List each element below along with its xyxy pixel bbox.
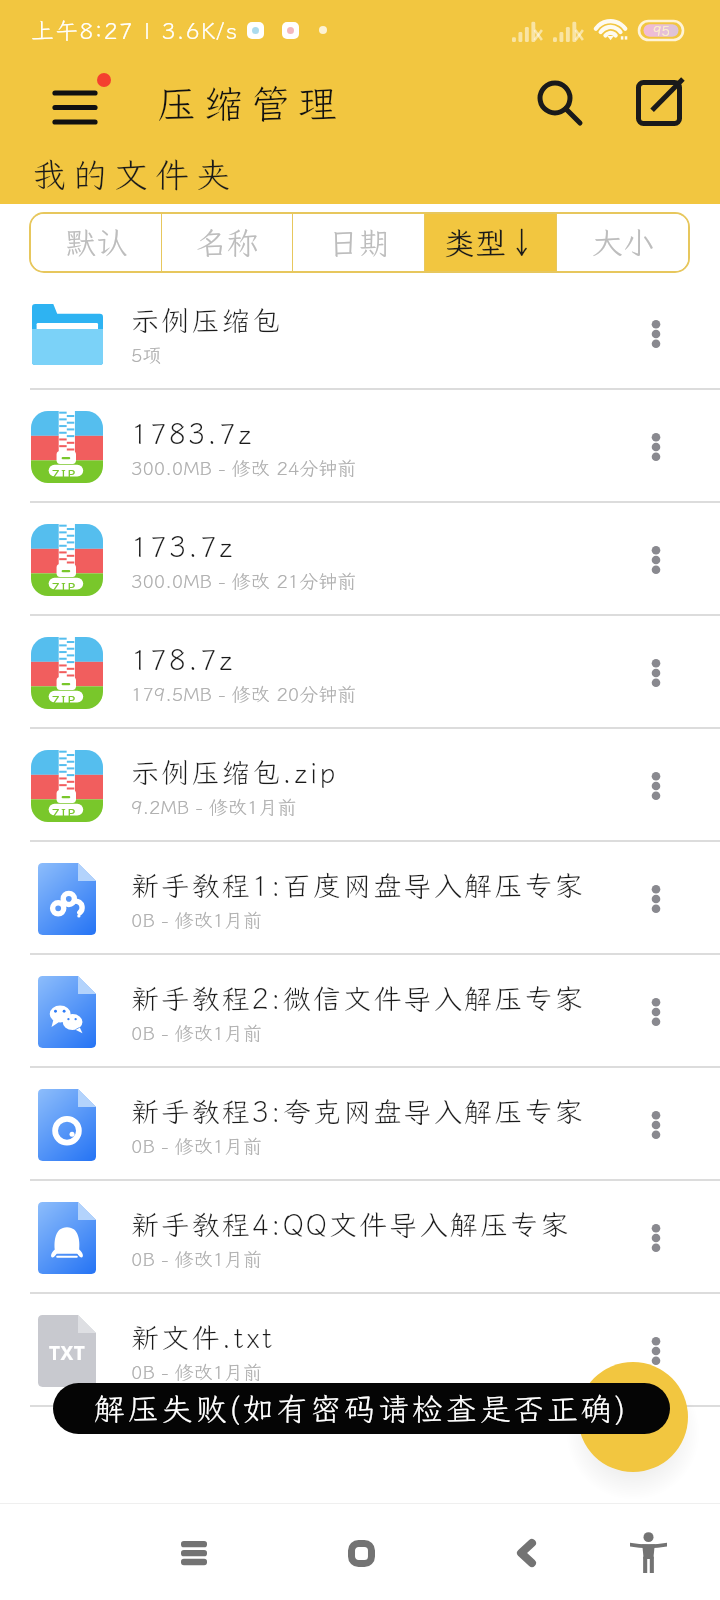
staticText: 压缩管理: [157, 78, 346, 129]
button[interactable]: ZIP: [0, 503, 720, 616]
button[interactable]: 新建: [578, 1362, 688, 1472]
button[interactable]: 更多选项: [619, 1202, 691, 1274]
button[interactable]: TXT: [0, 1294, 720, 1407]
staticText: ZIP: [52, 691, 78, 709]
staticText: 300.0MB - 修改 21分钟前: [131, 568, 357, 593]
button[interactable]: 更多选项: [619, 1089, 691, 1161]
button[interactable]: 示例压缩包: [0, 277, 720, 390]
staticText: 300.0MB - 修改 24分钟前: [131, 455, 357, 480]
staticText: 示例压缩包.zip: [131, 754, 338, 791]
button[interactable]: 大小: [557, 214, 688, 271]
staticText: 0B - 修改1月前: [131, 1133, 263, 1158]
button[interactable]: 最近任务: [146, 1530, 242, 1576]
staticText: 5项: [131, 342, 162, 367]
staticText: 1783.7z: [131, 415, 254, 452]
button[interactable]: 更多选项: [619, 750, 691, 822]
staticText: 0B - 修改1月前: [131, 1246, 263, 1271]
staticText: 新手教程4:QQ文件导入解压专家: [131, 1206, 571, 1243]
button[interactable]: 日期: [293, 214, 424, 271]
staticText: 95: [653, 22, 670, 40]
staticText: 0B - 修改1月前: [131, 907, 263, 932]
staticText: 上午8:27 | 3.6K/s: [31, 15, 239, 45]
button[interactable]: 默认: [31, 214, 161, 271]
button[interactable]: ZIP: [0, 390, 720, 503]
staticText: 日期: [328, 222, 390, 263]
button[interactable]: 新手教程1:百度网盘导入解压专家: [0, 842, 720, 955]
staticText: 我的文件夹: [32, 152, 237, 197]
staticText: 0B - 修改1月前: [131, 1020, 263, 1045]
button[interactable]: 新手教程4:QQ文件导入解压专家: [0, 1181, 720, 1294]
staticText: 示例压缩包: [131, 302, 283, 339]
button[interactable]: 更多选项: [619, 298, 691, 370]
button[interactable]: 名称: [162, 214, 292, 271]
staticText: 新手教程1:百度网盘导入解压专家: [131, 867, 585, 904]
button[interactable]: ZIP: [0, 729, 720, 842]
staticText: 新文件.txt: [131, 1319, 275, 1356]
button[interactable]: 更多选项: [619, 1315, 691, 1387]
button[interactable]: 无障碍: [600, 1524, 696, 1580]
button[interactable]: ZIP: [0, 616, 720, 729]
staticText: TXT: [49, 1340, 86, 1366]
button[interactable]: 搜索: [516, 60, 602, 146]
staticText: 名称: [196, 222, 258, 263]
button[interactable]: 更多选项: [619, 637, 691, 709]
button[interactable]: 更多选项: [619, 411, 691, 483]
button[interactable]: 返回: [478, 1530, 574, 1576]
staticText: 类型↓: [444, 222, 537, 263]
staticText: 178.7z: [131, 641, 235, 678]
staticText: 179.5MB - 修改 20分钟前: [131, 681, 357, 706]
staticText: 9.2MB - 修改1月前: [131, 794, 297, 819]
staticText: 173.7z: [131, 528, 235, 565]
staticText: ZIP: [52, 804, 78, 822]
staticText: 解压失败(如有密码请检查是否正确): [94, 1388, 629, 1429]
button[interactable]: 更多选项: [619, 524, 691, 596]
button[interactable]: 解压失败(如有密码请检查是否正确): [53, 1383, 670, 1434]
staticText: 默认: [65, 222, 127, 263]
button[interactable]: 主屏幕: [313, 1530, 409, 1576]
staticText: ZIP: [52, 578, 78, 596]
staticText: 大小: [592, 222, 654, 263]
button[interactable]: 更多选项: [619, 976, 691, 1048]
staticText: 0B - 修改1月前: [131, 1359, 263, 1384]
button[interactable]: 新手教程2:微信文件导入解压专家: [0, 955, 720, 1068]
staticText: 新手教程3:夸克网盘导入解压专家: [131, 1093, 585, 1130]
button[interactable]: 新手教程3:夸克网盘导入解压专家: [0, 1068, 720, 1181]
staticText: ZIP: [52, 465, 78, 483]
button[interactable]: 编辑: [616, 60, 702, 146]
staticText: 新手教程2:微信文件导入解压专家: [131, 980, 585, 1017]
button[interactable]: 类型↓: [425, 214, 556, 271]
button[interactable]: 菜单: [36, 66, 116, 140]
button[interactable]: 更多选项: [619, 863, 691, 935]
